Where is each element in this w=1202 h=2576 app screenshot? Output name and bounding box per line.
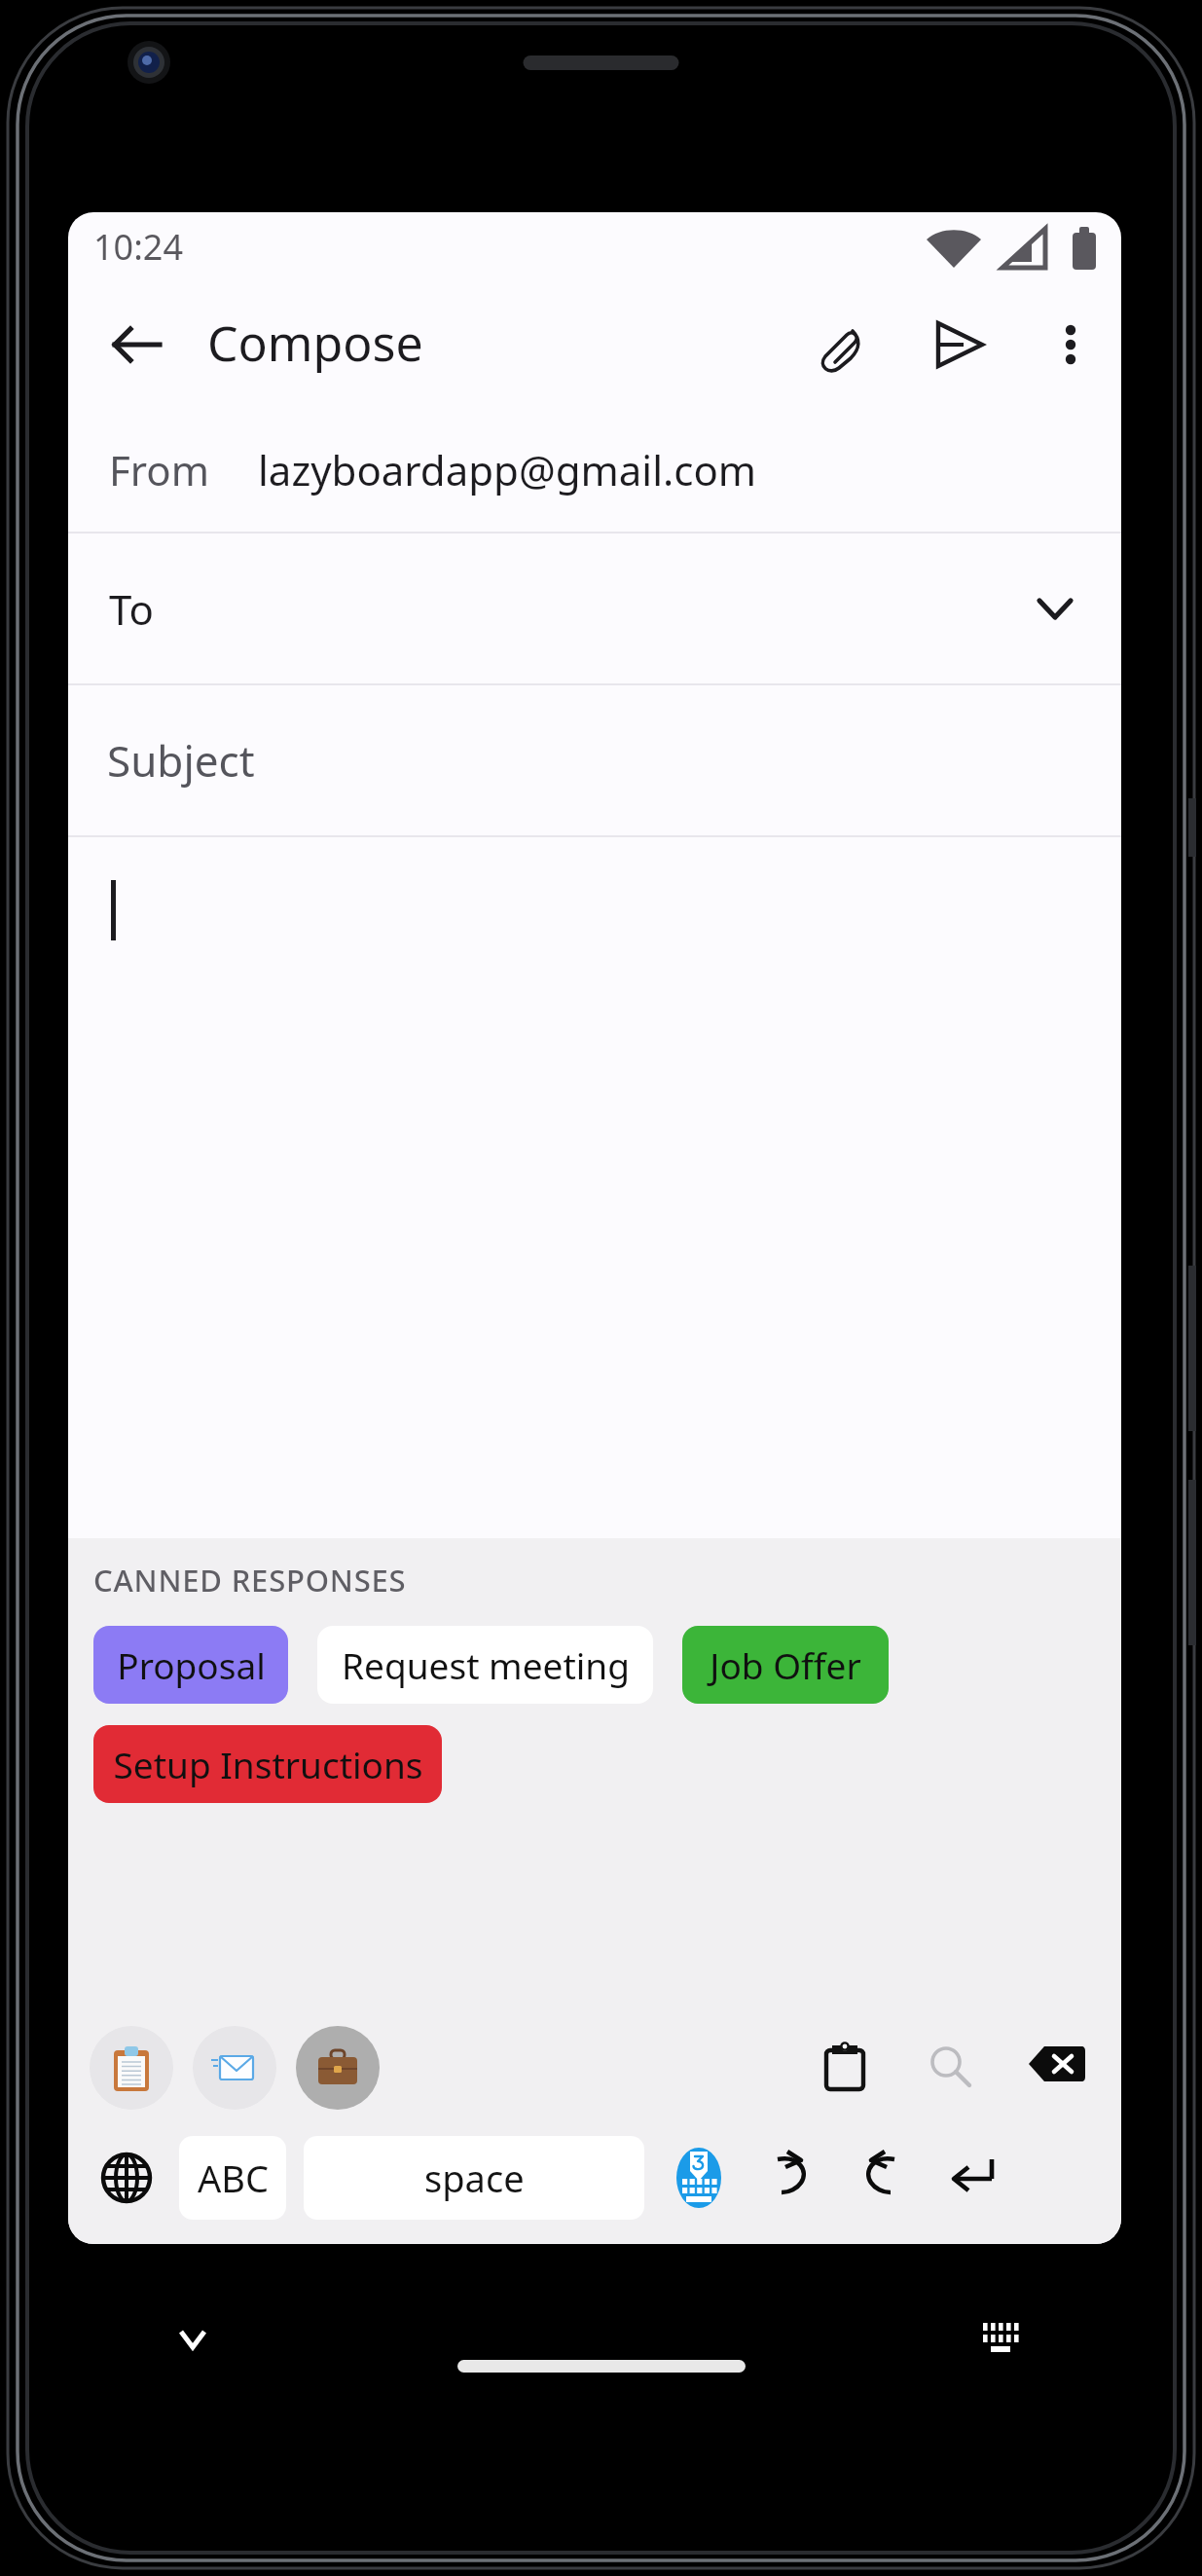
button[interactable]: Keyboard [954,2293,1047,2386]
button[interactable]: Attach file [802,304,884,386]
staticText: Subject [107,731,255,790]
button[interactable]: Clipboard [800,2023,890,2113]
button[interactable]: Enter [932,2137,1014,2219]
staticText: Proposal [117,1640,266,1689]
staticText: Setup Instructions [113,1740,423,1788]
button[interactable]: Expand recipients [1016,570,1094,647]
button[interactable]: Email tab [193,2026,276,2110]
button[interactable]: Search [907,2023,997,2113]
staticText: ABC [198,2153,269,2203]
button[interactable]: Redo [749,2137,831,2219]
button[interactable]: To [68,534,1121,683]
button[interactable]: Clipboard tab [90,2026,173,2110]
button[interactable]: Setup Instructions [93,1725,442,1803]
staticText: space [424,2153,525,2203]
staticText: Job Offer [710,1640,861,1689]
button[interactable]: Hide keyboard [146,2293,239,2386]
staticText: 10:24 [93,223,184,271]
button[interactable]: Work tab [296,2026,380,2110]
button[interactable]: More options [1030,304,1111,386]
button[interactable]: Switch keyboard [658,2137,740,2219]
button[interactable]: Proposal [93,1626,288,1704]
staticText: CANNED RESPONSES [93,1560,407,1601]
button[interactable]: Job Offer [682,1626,889,1704]
button[interactable]: Subject [68,685,1121,835]
button[interactable]: space [304,2136,644,2220]
button[interactable]: Request meeting [317,1626,653,1704]
button[interactable]: From [68,407,1121,532]
button[interactable] [68,837,1121,1538]
staticText: Request meeting [342,1640,630,1689]
staticText: Compose [207,310,423,376]
button[interactable]: Backspace [1012,2023,1102,2113]
button[interactable]: ABC [179,2136,286,2220]
staticText: To [109,581,154,637]
button[interactable]: Undo [841,2137,923,2219]
staticText: lazyboardapp@gmail.com [258,442,757,497]
button[interactable]: Change language [86,2137,167,2219]
button[interactable]: Send [919,304,1001,386]
staticText: From [109,442,209,497]
button[interactable]: Back [90,298,183,391]
